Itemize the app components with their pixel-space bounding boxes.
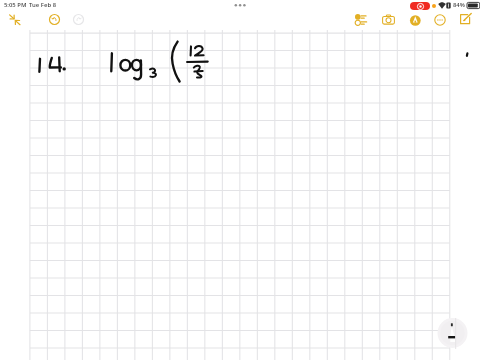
button[interactable]: Undo — [47, 12, 62, 27]
button[interactable]: Camera — [382, 14, 395, 25]
button[interactable]: Exit full screen — [8, 13, 22, 27]
button[interactable]: Redo — [71, 12, 86, 27]
button[interactable]: Pen tool preview — [437, 318, 468, 349]
button[interactable]: Pen tool — [409, 14, 422, 27]
button[interactable]: More options — [434, 14, 446, 26]
staticText: Tue Feb 8 — [29, 1, 56, 9]
button[interactable]: New note — [459, 13, 472, 26]
button[interactable]: Layers — [355, 14, 370, 26]
staticText: 5:05 PM — [4, 1, 27, 9]
button[interactable]: Screen recording — [410, 2, 430, 10]
staticText: 84% — [453, 1, 465, 9]
